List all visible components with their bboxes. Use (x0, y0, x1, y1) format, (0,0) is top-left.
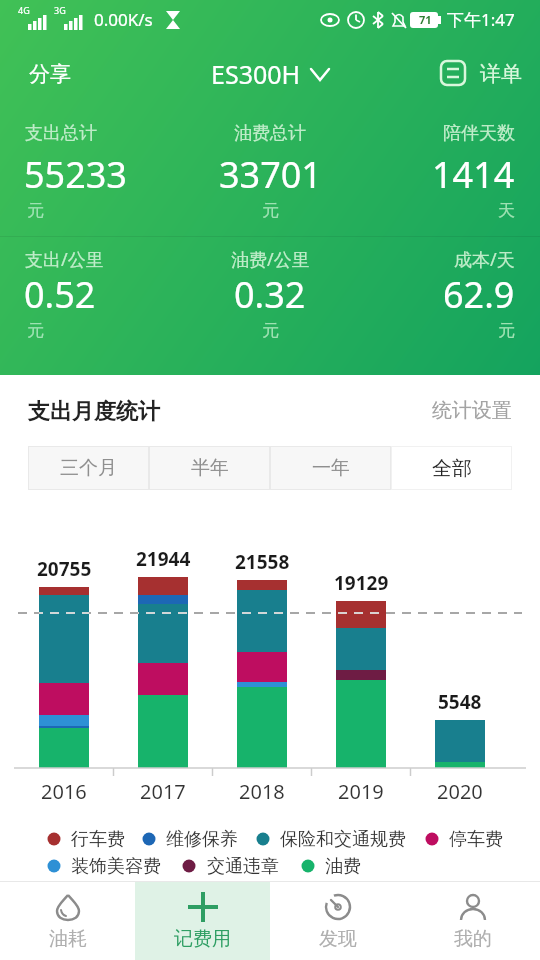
staticText: 详单 (480, 61, 522, 87)
staticText: 0.32 (234, 270, 306, 319)
staticText: 元 (498, 320, 515, 341)
button[interactable]: 全部 (391, 446, 512, 490)
staticText: 2016 (41, 778, 87, 805)
staticText: 陪伴天数 (443, 122, 515, 145)
button[interactable]: ES300H (190, 52, 350, 96)
staticText: 装饰美容费 (71, 855, 161, 878)
staticText: 1414 (432, 150, 515, 199)
staticText: 保险和交通规费 (280, 828, 406, 851)
button[interactable]: 统计设置 (400, 392, 512, 428)
staticText: 一年 (312, 456, 350, 480)
staticText: 半年 (191, 456, 229, 480)
button[interactable]: 油耗 (0, 882, 135, 960)
staticText: 交通违章 (207, 855, 279, 878)
staticText: 元 (262, 200, 279, 221)
staticText: 下午1:47 (447, 8, 515, 31)
button[interactable]: 我的 (405, 882, 540, 960)
staticText: 分享 (29, 61, 71, 87)
button[interactable]: 半年 (149, 446, 270, 490)
staticText: 33701 (219, 150, 322, 199)
staticText: 2018 (239, 778, 285, 805)
staticText: 62.9 (443, 270, 515, 319)
staticText: 4G (18, 4, 30, 16)
staticText: 元 (27, 320, 44, 341)
staticText: 全部 (432, 456, 472, 481)
staticText: 支出/公里 (25, 247, 104, 272)
staticText: 我的 (454, 927, 492, 951)
staticText: 支出总计 (25, 122, 97, 145)
staticText: ES300H (211, 57, 301, 91)
staticText: 55233 (24, 150, 127, 199)
staticText: 元 (262, 320, 279, 341)
staticText: 21558 (235, 549, 290, 575)
staticText: 5548 (438, 689, 482, 715)
staticText: 20755 (37, 556, 92, 582)
staticText: 油费总计 (234, 122, 306, 145)
staticText: 行车费 (71, 828, 125, 851)
staticText: 三个月 (60, 456, 117, 480)
button[interactable]: 分享 (15, 52, 85, 96)
staticText: 71 (419, 12, 432, 27)
button[interactable]: 详单 (430, 52, 530, 96)
button[interactable]: 发现 (270, 882, 405, 960)
staticText: 油费/公里 (231, 247, 310, 272)
staticText: 停车费 (449, 828, 503, 851)
staticText: 支出月度统计 (28, 398, 160, 426)
staticText: 油费 (325, 855, 361, 878)
button[interactable]: 一年 (270, 446, 391, 490)
staticText: 3G (54, 4, 66, 16)
staticText: 维修保养 (166, 828, 238, 851)
staticText: 记费用 (174, 927, 231, 951)
staticText: 0.00K/s (94, 8, 153, 31)
staticText: 19129 (334, 570, 389, 596)
staticText: 2017 (140, 778, 186, 805)
staticText: 2019 (338, 778, 384, 805)
staticText: 0.52 (24, 270, 96, 319)
staticText: 天 (498, 200, 515, 221)
staticText: 统计设置 (432, 398, 512, 423)
staticText: 成本/天 (454, 247, 515, 272)
staticText: 2020 (437, 778, 483, 805)
staticText: 21944 (136, 546, 191, 572)
staticText: 发现 (319, 927, 357, 951)
button[interactable]: 三个月 (28, 446, 149, 490)
staticText: 元 (27, 200, 44, 221)
button[interactable]: 记费用 (135, 882, 270, 960)
staticText: 油耗 (49, 927, 87, 951)
